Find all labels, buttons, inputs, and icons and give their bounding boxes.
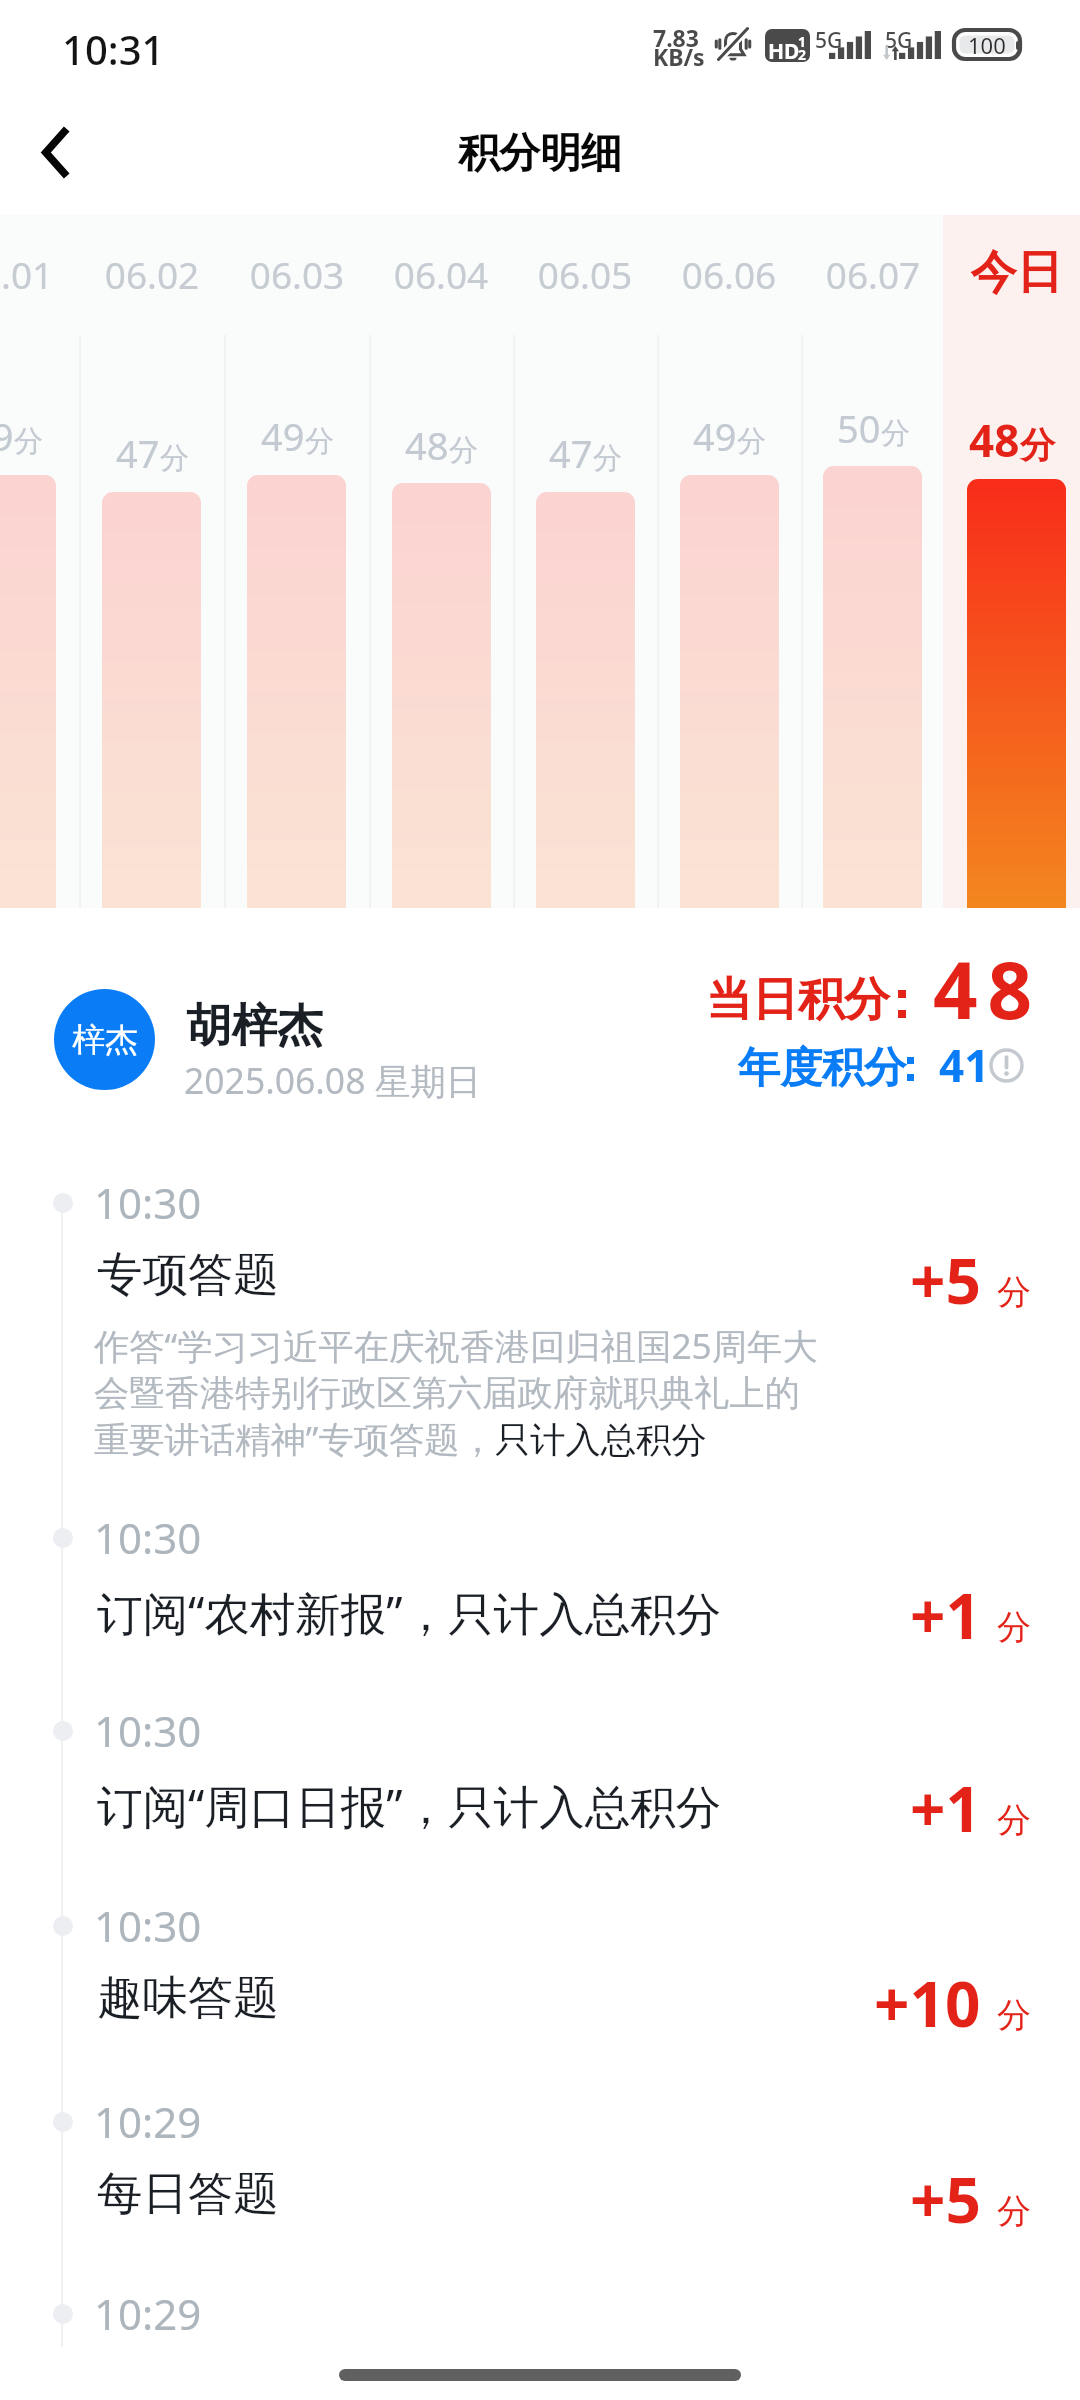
staticText: 每日答题: [97, 2165, 279, 2222]
staticText: 10:29: [94, 2093, 202, 2150]
staticText: 分: [160, 440, 189, 477]
staticText: 100: [968, 30, 1006, 59]
staticText: 49: [0, 410, 14, 462]
staticText: 10:30: [94, 1509, 202, 1566]
staticText: 梓杰: [72, 1019, 138, 1061]
button[interactable]: 积分说明: [989, 1048, 1024, 1083]
staticText: 10:30: [94, 1702, 202, 1759]
staticText: 50: [837, 402, 881, 454]
staticText: 47: [116, 427, 160, 479]
staticText: 06.04: [351, 249, 531, 299]
staticText: 49: [693, 410, 737, 462]
staticText: +5: [910, 1238, 981, 1322]
staticText: 10:30: [94, 1897, 202, 1954]
staticText: 06.05: [495, 249, 675, 299]
staticText: 分: [997, 1606, 1031, 1649]
button[interactable]: 10:29: [0, 2285, 1080, 2400]
staticText: 48: [933, 936, 1043, 1042]
button[interactable]: 10:30: [0, 1509, 1080, 1699]
staticText: 5G: [815, 26, 843, 55]
button[interactable]: 10:30: [0, 1702, 1080, 1892]
staticText: +1: [910, 1573, 981, 1657]
staticText: 订阅“周口日报”，只计入总积分: [97, 1774, 722, 1836]
staticText: 积分明细: [458, 128, 622, 180]
staticText: 49: [261, 410, 305, 462]
staticText: 5G: [885, 26, 913, 55]
staticText: 专项答题: [97, 1246, 279, 1303]
staticText: +10: [874, 1961, 981, 2045]
staticText: 41: [939, 1035, 990, 1095]
staticText: KB/s: [653, 41, 705, 72]
staticText: 胡梓杰: [186, 997, 323, 1054]
staticText: 今日: [948, 244, 1080, 302]
staticText: 48: [969, 410, 1020, 470]
staticText: 订阅“农村新报”，只计入总积分: [97, 1581, 722, 1643]
staticText: 06.06: [639, 249, 819, 299]
staticText: 7.83: [653, 22, 699, 53]
staticText: 分: [997, 1271, 1031, 1314]
staticText: +5: [910, 2157, 981, 2241]
staticText: 分: [1020, 423, 1055, 467]
button[interactable]: 返回: [0, 96, 111, 208]
staticText: HD: [768, 37, 800, 62]
staticText: 分: [593, 440, 622, 477]
staticText: 作答“学习习近平在庆祝香港回归祖国25周年大会暨香港特别行政区第六届政府就职典礼…: [94, 1321, 834, 1463]
button[interactable]: 10:29: [0, 2093, 1080, 2283]
staticText: 2: [798, 45, 807, 62]
staticText: 分: [997, 1994, 1031, 2037]
staticText: 06.07: [783, 249, 963, 299]
staticText: 分: [997, 1799, 1031, 1842]
staticText: 1: [798, 32, 807, 51]
staticText: 2025.06.08 星期日: [184, 1056, 482, 1104]
staticText: 分: [881, 415, 910, 452]
staticText: 分: [997, 2190, 1031, 2233]
staticText: 10:30: [94, 1174, 202, 1231]
staticText: 10:31: [62, 22, 165, 76]
staticText: 分: [449, 432, 478, 469]
staticText: +1: [910, 1766, 981, 1850]
staticText: 48: [405, 419, 449, 471]
staticText: 分: [305, 423, 334, 460]
button[interactable]: 10:30: [0, 1174, 1080, 1504]
staticText: 趣味答题: [97, 1969, 279, 2026]
staticText: 年度积分: [738, 1042, 906, 1095]
staticText: 06.03: [207, 249, 387, 299]
staticText: 当日积分: [706, 971, 890, 1029]
staticText: 47: [549, 427, 593, 479]
staticText: 10:29: [94, 2285, 202, 2342]
staticText: 06.01: [0, 249, 96, 299]
staticText: 06.02: [62, 249, 242, 299]
button[interactable]: 10:30: [0, 1897, 1080, 2087]
staticText: 分: [737, 423, 766, 460]
staticText: 分: [14, 423, 43, 460]
